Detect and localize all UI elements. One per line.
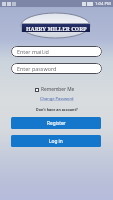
button[interactable]: Remember Me — [35, 85, 75, 94]
button[interactable]: Change Password — [39, 95, 75, 102]
button[interactable]: Register — [11, 117, 101, 129]
staticText: Log in — [49, 138, 63, 145]
staticText: 1:04 PM — [95, 1, 111, 7]
staticText: HARRY MILLER CORP — [26, 25, 87, 32]
staticText: Register — [47, 120, 66, 127]
staticText: Remember Me — [41, 86, 75, 93]
staticText: Don't have an account? — [36, 107, 78, 112]
button[interactable]: Log in — [11, 135, 101, 147]
staticText: Enter password — [17, 65, 57, 72]
button[interactable]: Enter password — [11, 63, 102, 74]
button[interactable]: Enter mail.id — [11, 46, 102, 57]
staticText: Enter mail.id — [17, 48, 49, 55]
